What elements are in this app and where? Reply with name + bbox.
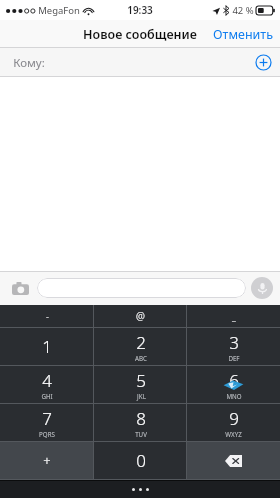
staticText: GHI [41,392,53,400]
button[interactable]: 3 [187,328,280,365]
button[interactable]: Отменить [206,22,280,47]
staticText: 3 [229,331,239,354]
staticText: 4 [42,369,52,392]
staticText: DEF [228,354,240,362]
staticText: 1 [42,335,52,358]
staticText: PQRS [39,430,55,438]
button[interactable]: 0 [94,442,187,479]
button[interactable]: - [0,305,94,327]
button[interactable]: Add contact [255,54,272,71]
button[interactable]: 5 [94,366,187,403]
staticText: Новое сообщение [83,26,197,43]
button[interactable]: @ [94,305,187,327]
staticText: 2 [136,331,146,354]
button[interactable]: 1 [0,328,94,365]
staticText: 42 % [232,4,254,17]
staticText: MNO [226,392,242,400]
staticText: + [43,452,51,470]
staticText: 7 [42,407,52,430]
staticText: 5 [136,369,146,392]
button[interactable]: 6 [187,366,280,403]
button[interactable]: _ [187,305,280,327]
button[interactable]: + [0,442,94,479]
button[interactable] [37,278,246,298]
button[interactable]: 9 [187,404,280,441]
staticText: MegaFon [38,4,80,17]
staticText: ABC [135,354,147,362]
staticText: 8 [136,407,146,430]
staticText: _ [232,310,236,322]
button[interactable]: 8 [94,404,187,441]
button[interactable]: 7 [0,404,94,441]
button[interactable]: Кому: [0,48,280,77]
button[interactable]: 4 [0,366,94,403]
staticText: 0 [136,449,146,472]
staticText: WXYZ [225,430,242,438]
staticText: Кому: [13,55,45,71]
button[interactable]: Camera [7,275,33,301]
button[interactable]: Dictate [251,277,273,299]
staticText: JKL [137,392,146,400]
button[interactable]: 2 [94,328,187,365]
staticText: Отменить [213,26,273,43]
button[interactable]: Новое сообщение [83,26,197,43]
staticText: @ [136,309,145,323]
staticText: - [46,310,49,322]
button[interactable]: Backspace [187,442,280,479]
staticText: TUV [135,430,147,438]
staticText: 6 [229,369,239,392]
staticText: 9 [229,407,239,430]
staticText: 19:33 [127,3,153,17]
